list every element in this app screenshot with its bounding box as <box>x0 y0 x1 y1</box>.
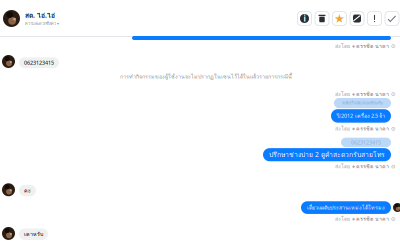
staticText: ครรชิต นาคา <box>356 90 389 98</box>
staticText: ◆ <box>352 217 356 221</box>
staticText: ส่งโดย <box>335 90 352 98</box>
button[interactable]: Star <box>332 11 346 25</box>
button[interactable]: Info <box>297 11 311 25</box>
staticText: หนึ่งปีรถสเปคเหมือนกัน <box>342 100 383 106</box>
button[interactable]: Report <box>367 11 381 25</box>
staticText: ปรึกษาช่างบ่าย 2 ดูคำสะดวกรับสายโทร <box>269 149 385 160</box>
staticText: ◆ <box>352 44 356 48</box>
staticText: ★ <box>334 12 345 25</box>
staticText: ⊙ <box>389 216 395 222</box>
button[interactable]: คะ <box>19 185 36 196</box>
staticText: 0623123415 <box>24 59 54 66</box>
staticText: ครรชิต นาคา <box>356 42 389 50</box>
staticText: เดี๋ยวแผดับประสานเหม่งได้โทรมง <box>307 203 385 212</box>
staticText: ส่งโดย <box>335 162 352 170</box>
staticText: ส่งโดย <box>335 215 352 223</box>
staticText: ครรชิต นาคา <box>356 162 389 170</box>
button[interactable]: Delete <box>315 11 329 25</box>
staticText: เคาหรับ <box>24 230 43 238</box>
staticText: ⊙ <box>389 91 395 97</box>
button[interactable]: Block <box>350 11 364 25</box>
staticText: ◆ <box>352 164 356 168</box>
staticText: 0623123415 <box>351 139 381 146</box>
staticText: ⊙ <box>389 43 395 49</box>
staticText: i <box>303 13 305 24</box>
staticText: ⊙ <box>389 126 395 132</box>
staticText: ◆ <box>352 126 356 131</box>
button[interactable]: เคาหรับ <box>19 228 48 240</box>
staticText: ครรชิต นาคา <box>356 215 389 223</box>
button[interactable]: หนึ่งปีรถสเปคเหมือนกัน <box>334 98 391 108</box>
button[interactable]: 0623123415 <box>19 57 59 68</box>
button[interactable]: เดี๋ยวแผดับประสานเหม่งได้โทรมง <box>301 201 391 214</box>
button[interactable]: Done <box>385 11 399 25</box>
staticText: ส่งโดย <box>335 124 352 133</box>
staticText: ปี 2012 เครื่อง 2.5 จ้า <box>337 112 385 120</box>
staticText: สด. ไอ่.ไอ่ <box>25 10 55 20</box>
staticText: คะ <box>24 186 31 195</box>
staticText: ⊙ <box>389 163 395 169</box>
button[interactable]: ปรึกษาช่างบ่าย 2 ดูคำสะดวกรับสายโทร <box>263 148 391 161</box>
staticText: ◆ <box>352 92 356 96</box>
staticText: การทำกิจกรรมของผู้ใช้งานจะไม่ปรากฏในเซนไ… <box>120 72 292 81</box>
staticText: ความสะดวกข้อคว ▾ <box>25 21 59 27</box>
button[interactable]: สด. ไอ่.ไอ่ <box>0 10 59 27</box>
staticText: ส่งโดย <box>335 42 352 50</box>
button[interactable]: ปี 2012 เครื่อง 2.5 จ้า <box>331 109 391 123</box>
button[interactable]: 0623123415 <box>341 138 391 147</box>
staticText: ครรชิต นาคา <box>356 124 389 133</box>
